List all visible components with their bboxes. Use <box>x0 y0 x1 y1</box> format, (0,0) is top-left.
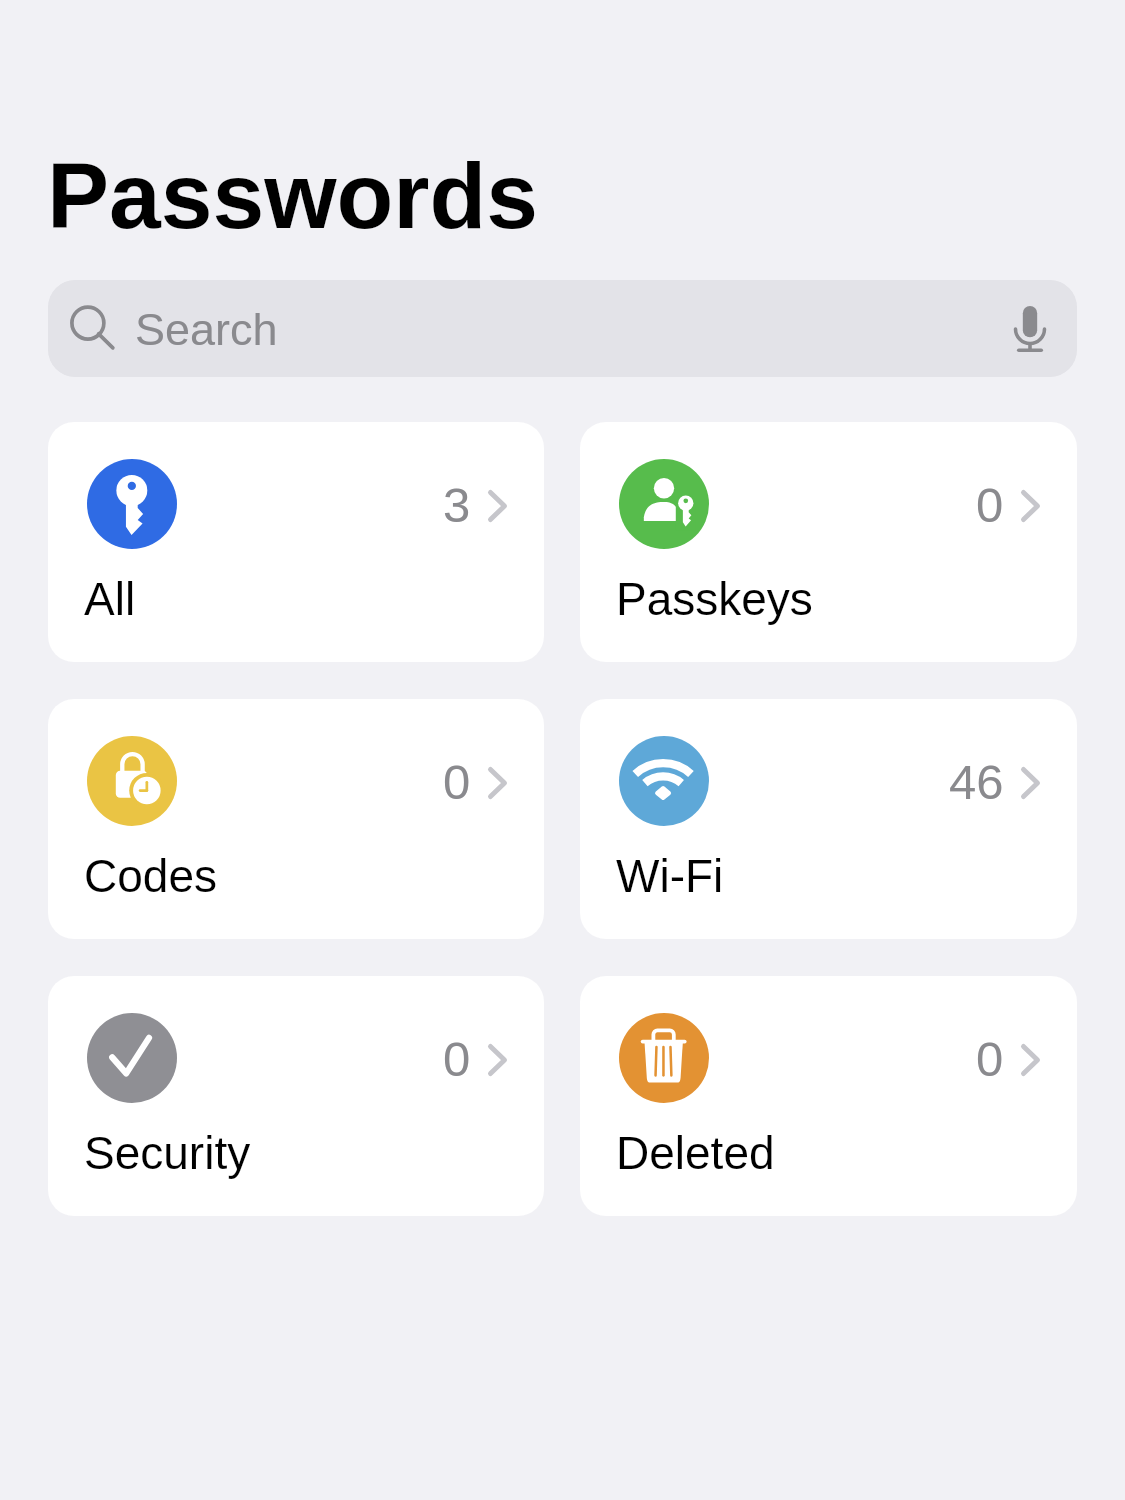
button[interactable]: 0 <box>48 699 544 939</box>
staticText: Passkeys <box>616 573 813 624</box>
staticText: Security <box>84 1127 251 1178</box>
staticText: All <box>84 573 136 624</box>
other: Voice search <box>1007 306 1053 352</box>
staticText: Deleted <box>616 1127 775 1178</box>
staticText: 0 <box>443 1032 471 1087</box>
staticText: Passwords <box>47 144 539 248</box>
staticText: 46 <box>949 755 1004 810</box>
button[interactable]: 0 <box>580 976 1077 1216</box>
staticText: 0 <box>976 478 1004 533</box>
staticText: 0 <box>443 755 471 810</box>
staticText: 0 <box>976 1032 1004 1087</box>
staticText: 3 <box>443 478 471 533</box>
button[interactable]: Search <box>48 280 1077 377</box>
button[interactable]: 0 <box>580 422 1077 662</box>
button[interactable]: 3 <box>48 422 544 662</box>
staticText: Codes <box>84 850 217 901</box>
staticText: Wi-Fi <box>616 850 724 901</box>
button[interactable]: 0 <box>48 976 544 1216</box>
staticText: Search <box>135 304 278 354</box>
button[interactable]: 46 <box>580 699 1077 939</box>
